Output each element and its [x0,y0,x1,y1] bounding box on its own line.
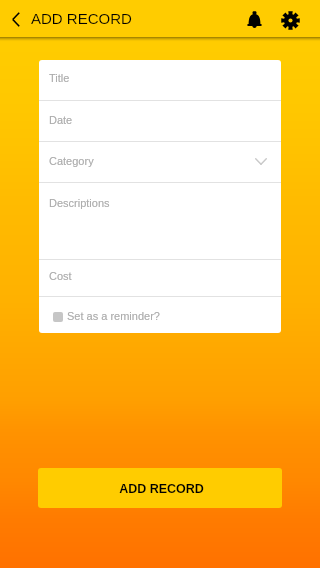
button[interactable]: Notifications [239,4,270,36]
staticText: Set as a reminder? [67,310,160,322]
staticText: Title [49,72,70,84]
staticText: ADD RECORD [31,10,132,27]
button[interactable]: ADD RECORD [38,468,282,508]
staticText: ADD RECORD [119,482,204,496]
staticText: Category [49,155,94,167]
button[interactable]: Date [39,101,281,141]
button[interactable]: Settings [275,4,306,37]
button[interactable]: Back [0,6,31,35]
button[interactable]: Title [39,60,281,100]
staticText: Descriptions [49,197,110,209]
button[interactable]: Category [39,142,281,182]
button[interactable]: Descriptions [39,183,281,259]
staticText: Date [49,114,73,126]
button[interactable]: Set as a reminder? [39,297,281,333]
staticText: Cost [49,270,72,282]
button[interactable]: Cost [39,260,281,296]
